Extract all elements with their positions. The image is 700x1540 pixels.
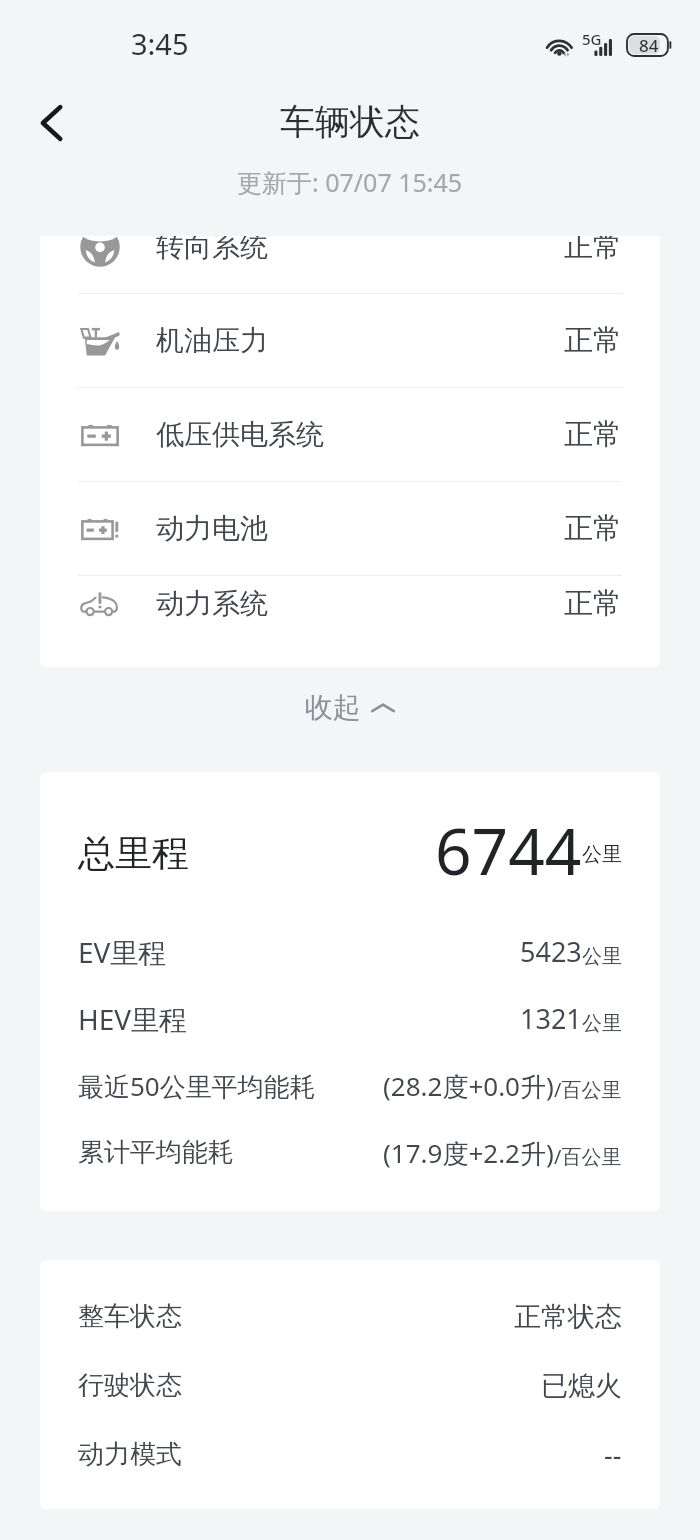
staticText: /百公里 — [554, 1076, 622, 1103]
staticText: 低压供电系统 — [156, 417, 324, 452]
staticText: 已熄火 — [541, 1369, 622, 1403]
staticText: HEV里程 — [78, 1000, 188, 1038]
staticText: 机油压力 — [156, 323, 268, 358]
staticText: 整车状态 — [78, 1300, 182, 1333]
button[interactable]: 收起 — [0, 667, 700, 772]
staticText: 正常 — [564, 510, 622, 547]
staticText: 3:45 — [131, 24, 189, 63]
staticText: 84 — [639, 34, 659, 56]
staticText: 车辆状态 — [280, 100, 420, 144]
staticText: 公里 — [582, 944, 622, 969]
staticText: 正常 — [564, 322, 622, 359]
staticText: 更新于: 07/07 15:45 — [237, 165, 463, 199]
staticText: 正常状态 — [514, 1300, 622, 1334]
staticText: 公里 — [582, 842, 622, 867]
staticText: 总里程 — [78, 830, 189, 877]
staticText: (28.2度+0.0升) — [383, 1068, 554, 1104]
staticText: 转向系统 — [156, 236, 268, 264]
staticText: 6744 — [435, 807, 582, 894]
staticText: -- — [604, 1436, 622, 1473]
staticText: 动力模式 — [78, 1438, 182, 1471]
staticText: (17.9度+2.2升) — [383, 1135, 554, 1171]
staticText: 5G — [582, 29, 602, 49]
staticText: 最近50公里平均能耗 — [78, 1068, 316, 1104]
staticText: /百公里 — [554, 1143, 622, 1170]
staticText: 5423 — [520, 933, 582, 970]
staticText: 收起 — [305, 690, 361, 725]
button[interactable]: 低压供电系统 — [40, 388, 660, 481]
staticText: 正常 — [564, 416, 622, 453]
button[interactable]: 动力系统 — [40, 576, 660, 631]
staticText: 动力系统 — [156, 586, 268, 621]
staticText: 动力电池 — [156, 511, 268, 546]
staticText: 行驶状态 — [78, 1369, 182, 1402]
staticText: EV里程 — [78, 933, 167, 971]
staticText: 正常 — [564, 585, 622, 622]
button[interactable]: Back — [22, 92, 84, 154]
button[interactable]: 机油压力 — [40, 294, 660, 387]
staticText: 1321 — [520, 1000, 582, 1037]
staticText: 公里 — [582, 1011, 622, 1036]
button[interactable]: 转向系统 — [40, 236, 660, 293]
staticText: 累计平均能耗 — [78, 1136, 234, 1169]
staticText: 正常 — [564, 236, 622, 265]
button[interactable]: 动力电池 — [40, 482, 660, 575]
